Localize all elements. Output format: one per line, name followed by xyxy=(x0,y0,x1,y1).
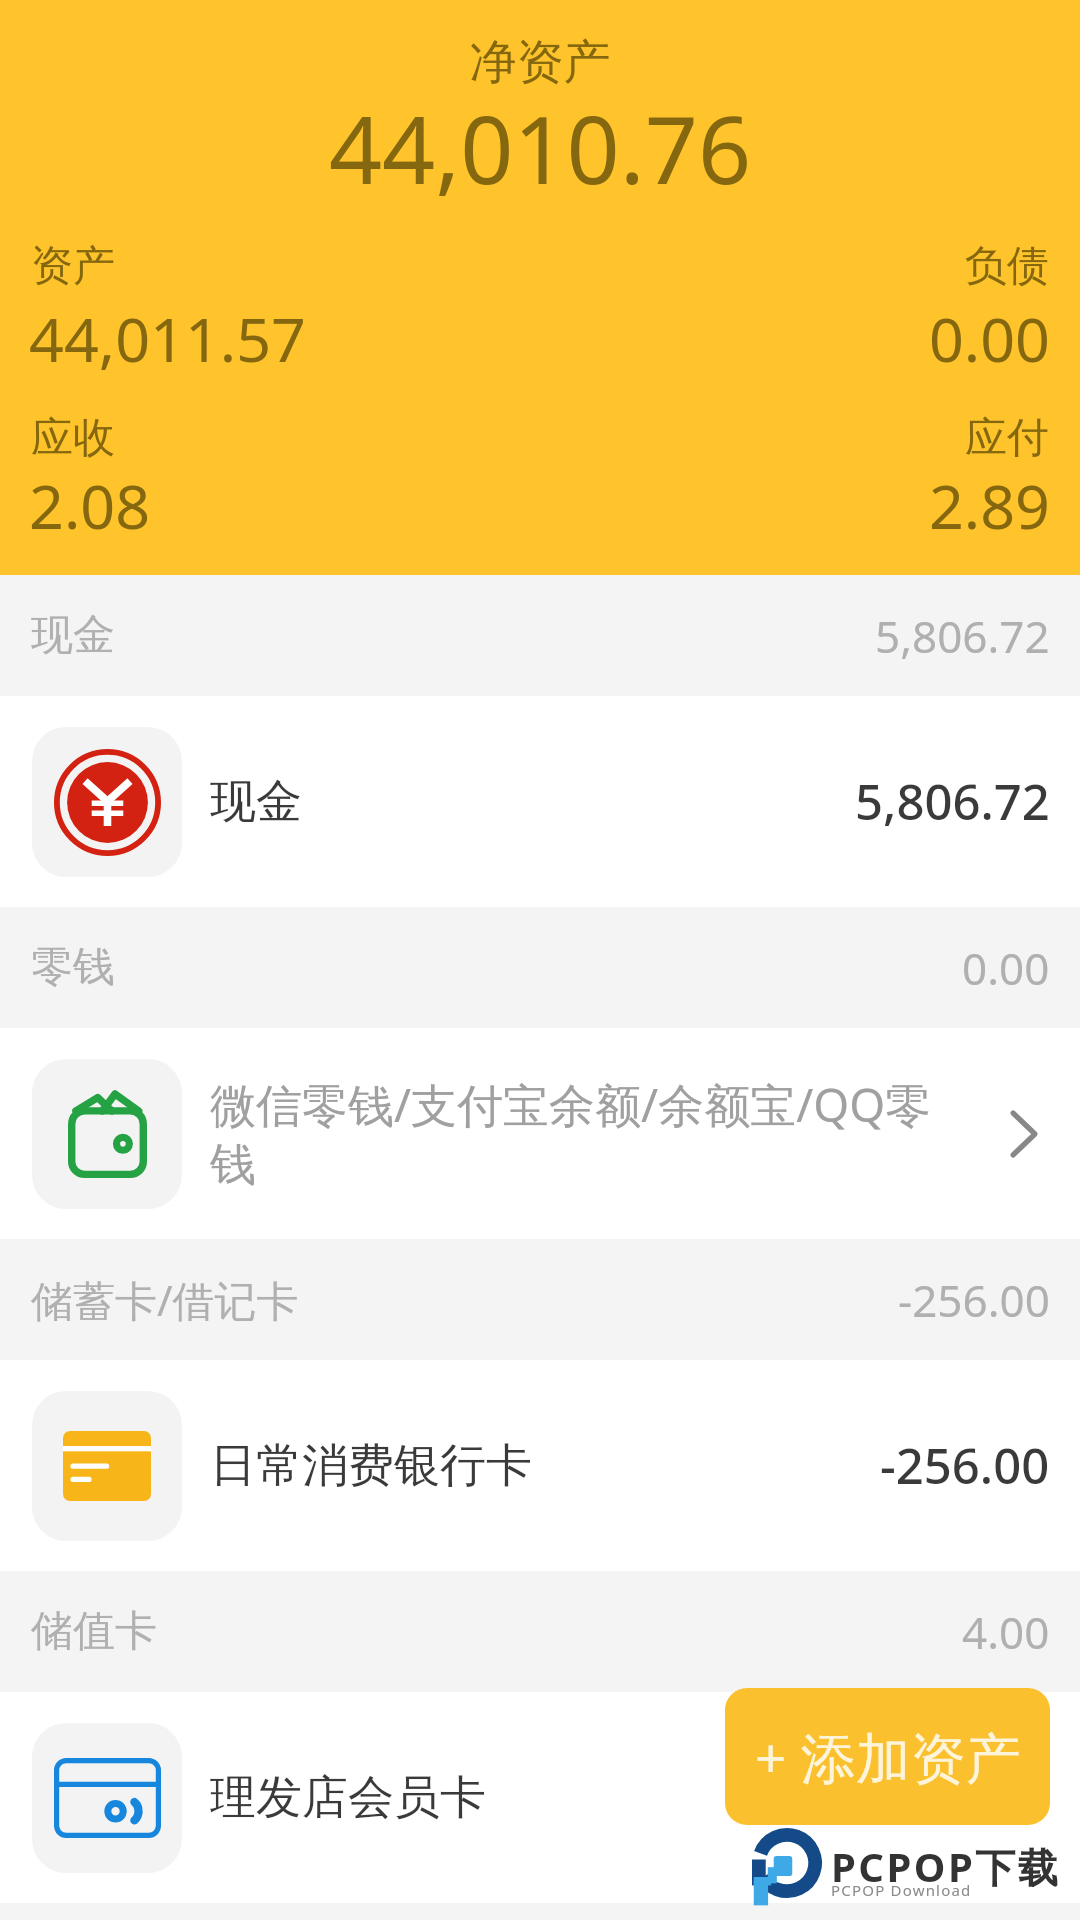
staticText: 日常消费银行卡 xyxy=(210,1437,868,1495)
staticText: 44,011.57 xyxy=(29,297,306,380)
staticText: -256.00 xyxy=(880,1432,1050,1499)
staticText: 0.00 xyxy=(962,938,1050,998)
staticText: 理发店会员卡 xyxy=(210,1769,1050,1827)
staticText: + 添加资产 xyxy=(755,1719,1021,1794)
button[interactable]: 理发店会员卡 xyxy=(0,1692,1080,1903)
staticText: 5,806.72 xyxy=(875,606,1050,666)
button[interactable]: 微信零钱/支付宝余额/余额宝/QQ零钱 xyxy=(0,1028,1080,1239)
staticText: 应付 xyxy=(0,412,1049,465)
staticText: 负债 xyxy=(0,240,1049,293)
button[interactable]: 零钱 xyxy=(0,907,1080,1028)
staticText: 现金 xyxy=(31,609,115,662)
button[interactable]: 储蓄卡/借记卡 xyxy=(0,1239,1080,1360)
staticText: 净资产 xyxy=(0,33,1080,92)
staticText: -256.00 xyxy=(898,1270,1050,1330)
staticText: PCPOP Download xyxy=(831,1880,972,1900)
staticText: 44,010.76 xyxy=(0,85,1080,212)
staticText: 储蓄卡/借记卡 xyxy=(31,1271,299,1328)
staticText: 零钱 xyxy=(31,941,115,994)
staticText: 微信零钱/支付宝余额/余额宝/QQ零钱 xyxy=(210,1073,955,1194)
staticText: 5,806.72 xyxy=(855,768,1050,835)
staticText: 资产 xyxy=(31,240,115,293)
staticText: 2.89 xyxy=(0,464,1050,547)
staticText: 4.00 xyxy=(962,1602,1050,1662)
button[interactable]: 储值卡 xyxy=(0,1571,1080,1692)
staticText: 2.08 xyxy=(29,464,151,547)
button[interactable]: 添加资产 xyxy=(725,1688,1050,1825)
staticText: 0.00 xyxy=(0,297,1050,380)
staticText: PCPOP下载 xyxy=(831,1839,1080,1894)
staticText: 现金 xyxy=(210,773,843,831)
other: More xyxy=(998,1108,1050,1160)
staticText: 应收 xyxy=(31,412,115,465)
button[interactable]: 日常消费银行卡 xyxy=(0,1360,1080,1571)
button[interactable]: 现金 xyxy=(0,696,1080,907)
staticText: 储值卡 xyxy=(31,1605,157,1658)
button[interactable]: 现金 xyxy=(0,575,1080,696)
